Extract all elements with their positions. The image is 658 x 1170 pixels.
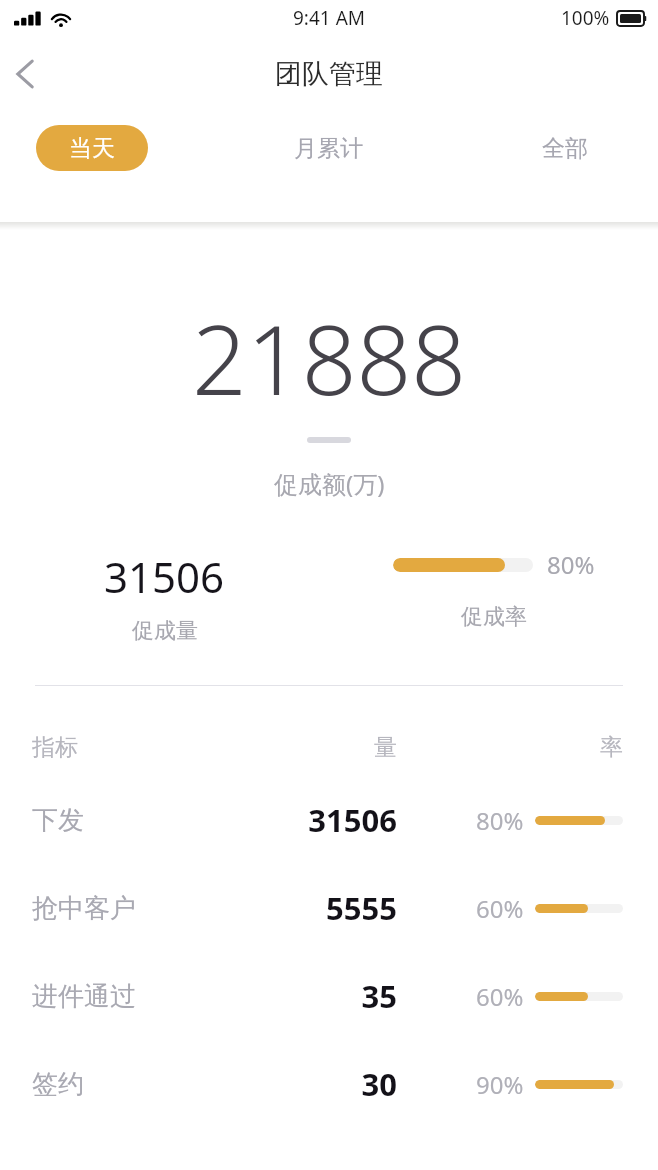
staticText: 35 <box>255 975 397 1017</box>
staticText: 下发 <box>32 804 84 837</box>
staticText: 100% <box>561 5 610 31</box>
staticText: 31506 <box>255 799 397 841</box>
staticText: 80% <box>476 804 524 837</box>
button[interactable]: 抢中客户 <box>0 864 658 952</box>
button[interactable]: 月累计 <box>272 125 384 171</box>
staticText: 21888 <box>192 292 467 423</box>
staticText: 当天 <box>69 134 115 163</box>
button[interactable]: 进件通过 <box>0 952 658 1040</box>
staticText: 签约 <box>32 1068 84 1101</box>
staticText: 促成额(万) <box>274 467 385 500</box>
staticText: 60% <box>476 980 524 1013</box>
button[interactable]: 签约 <box>0 1040 658 1128</box>
staticText: 抢中客户 <box>32 892 136 925</box>
staticText: 30 <box>255 1063 397 1105</box>
staticText: 90% <box>476 1068 524 1101</box>
button[interactable]: 下发 <box>0 776 658 864</box>
staticText: 量 <box>285 733 397 762</box>
staticText: 促成量 <box>132 617 198 645</box>
staticText: 团队管理 <box>275 57 383 91</box>
staticText: 促成率 <box>461 603 527 631</box>
staticText: 9:41 AM <box>293 5 366 31</box>
staticText: 80% <box>547 548 595 581</box>
staticText: 60% <box>476 892 524 925</box>
staticText: 31506 <box>104 548 225 605</box>
button[interactable]: 全部 <box>509 125 621 171</box>
staticText: 月累计 <box>294 134 363 163</box>
button[interactable]: Back <box>0 43 62 105</box>
staticText: 进件通过 <box>32 980 136 1013</box>
button[interactable]: 当天 <box>36 125 148 171</box>
staticText: 率 <box>600 733 623 762</box>
staticText: 全部 <box>542 134 588 163</box>
staticText: 指标 <box>32 733 78 762</box>
staticText: 5555 <box>255 887 397 929</box>
